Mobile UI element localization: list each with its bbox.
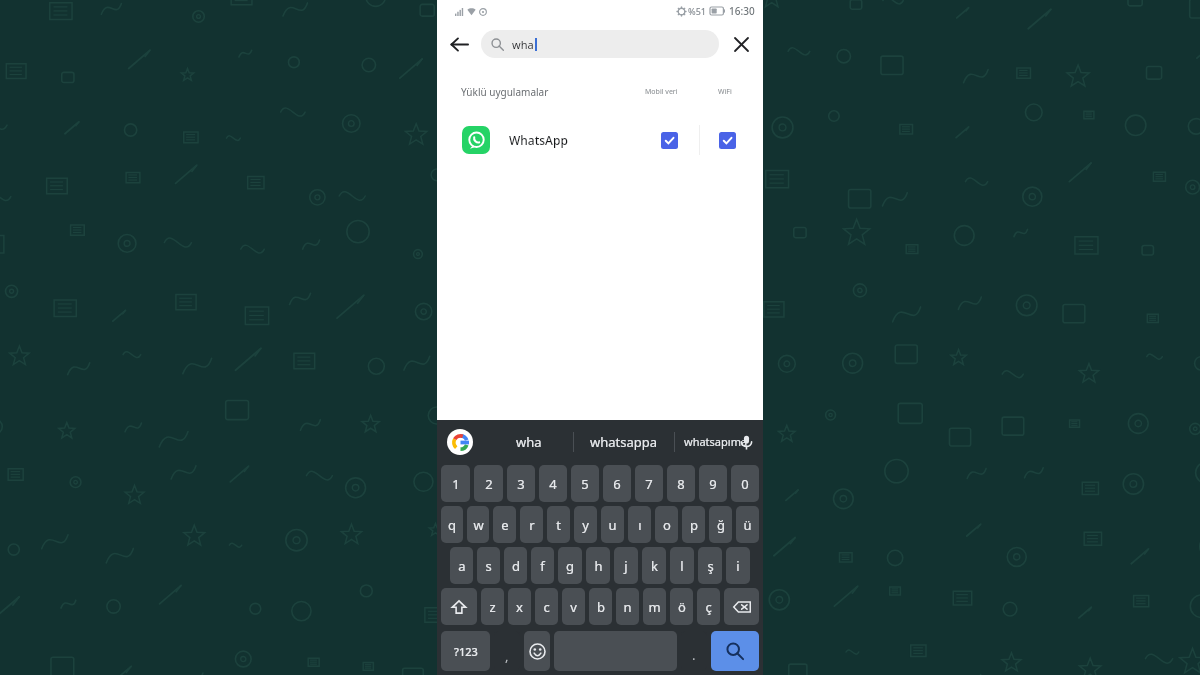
staticText: 9 [709, 475, 717, 493]
button[interactable]: u [601, 506, 624, 543]
staticText: q [448, 516, 456, 534]
button[interactable]: 7 [635, 465, 663, 502]
button[interactable]: c [535, 588, 558, 625]
button[interactable]: d [504, 547, 527, 584]
staticText: o [663, 516, 671, 534]
button[interactable]: WhatsApp [437, 118, 763, 162]
staticText: whatsappa [590, 433, 658, 451]
staticText: x [516, 598, 523, 616]
staticText: wha [512, 37, 534, 52]
button[interactable]: ı [628, 506, 651, 543]
button[interactable]: q [441, 506, 463, 543]
button[interactable]: p [682, 506, 705, 543]
button[interactable]: ğ [709, 506, 732, 543]
button[interactable]: i [726, 547, 750, 584]
staticText: r [529, 516, 535, 534]
button[interactable]: ş [698, 547, 722, 584]
button[interactable]: w [467, 506, 489, 543]
button[interactable]: o [655, 506, 678, 543]
staticText: l [680, 557, 684, 575]
button[interactable]: 2 [474, 465, 503, 502]
button[interactable]: j [614, 547, 638, 584]
button[interactable]: wha [485, 420, 573, 463]
button[interactable]: 0 [731, 465, 759, 502]
button[interactable]: Period [681, 631, 707, 671]
button[interactable]: 9 [699, 465, 727, 502]
button[interactable]: 4 [539, 465, 567, 502]
button[interactable]: r [520, 506, 543, 543]
staticText: z [489, 598, 496, 616]
staticText: w [473, 516, 484, 534]
staticText: s [485, 557, 492, 575]
staticText: 6 [613, 475, 621, 493]
button[interactable]: 3 [507, 465, 535, 502]
staticText: a [458, 557, 466, 575]
staticText: g [566, 557, 574, 575]
button[interactable]: f [531, 547, 554, 584]
button[interactable]: ?123 [441, 631, 490, 671]
staticText: 4 [549, 475, 557, 493]
staticText: e [501, 516, 509, 534]
staticText: ç [705, 598, 712, 616]
button[interactable]: z [481, 588, 504, 625]
button[interactable]: b [589, 588, 612, 625]
staticText: 3 [517, 475, 525, 493]
staticText: f [540, 557, 545, 575]
staticText: c [543, 598, 550, 616]
staticText: WiFi [718, 87, 732, 97]
button[interactable]: 5 [571, 465, 599, 502]
staticText: b [597, 598, 605, 616]
staticText: wha [516, 433, 542, 451]
staticText: %51 [688, 5, 706, 17]
button[interactable]: ü [736, 506, 759, 543]
button[interactable]: Backspace [724, 588, 759, 625]
button[interactable]: Back [437, 22, 481, 66]
button[interactable]: 1 [441, 465, 470, 502]
button[interactable]: Shift [441, 588, 477, 625]
button[interactable]: Google [447, 429, 473, 455]
staticText: 1 [452, 475, 460, 493]
staticText: v [570, 598, 577, 616]
staticText: ?123 [454, 644, 478, 659]
button[interactable]: Comma [494, 631, 520, 671]
button[interactable]: Emoji [524, 631, 550, 671]
staticText: h [594, 557, 603, 575]
button[interactable]: a [450, 547, 473, 584]
staticText: , [505, 647, 509, 665]
staticText: WhatsApp [509, 132, 568, 148]
button[interactable]: Toggle [719, 132, 736, 149]
button[interactable]: wha [481, 30, 719, 58]
staticText: Yüklü uygulamalar [461, 85, 549, 99]
button[interactable]: k [642, 547, 666, 584]
button[interactable]: m [643, 588, 666, 625]
staticText: i [736, 557, 740, 575]
button[interactable]: s [477, 547, 500, 584]
button[interactable]: Search [711, 631, 759, 671]
button[interactable]: ç [697, 588, 720, 625]
staticText: 7 [645, 475, 653, 493]
staticText: k [651, 557, 658, 575]
button[interactable]: g [558, 547, 582, 584]
button[interactable]: l [670, 547, 694, 584]
button[interactable]: t [547, 506, 570, 543]
button[interactable]: x [508, 588, 531, 625]
button[interactable]: whatsappa [574, 420, 674, 463]
button[interactable]: v [562, 588, 585, 625]
button[interactable]: 6 [603, 465, 631, 502]
button[interactable]: y [574, 506, 597, 543]
button[interactable]: Clear [719, 22, 763, 66]
staticText: whatsapıma [684, 434, 748, 449]
button[interactable]: Voice input [733, 429, 759, 455]
staticText: m [648, 598, 661, 616]
button[interactable]: 8 [667, 465, 695, 502]
button[interactable]: n [616, 588, 639, 625]
button[interactable]: whatsapıma [675, 420, 757, 463]
button[interactable]: ö [670, 588, 693, 625]
staticText: 5 [581, 475, 589, 493]
button[interactable]: h [586, 547, 610, 584]
button[interactable]: Toggle [661, 132, 678, 149]
staticText: . [692, 646, 696, 664]
staticText: 16:30 [729, 4, 755, 18]
button[interactable]: e [493, 506, 516, 543]
